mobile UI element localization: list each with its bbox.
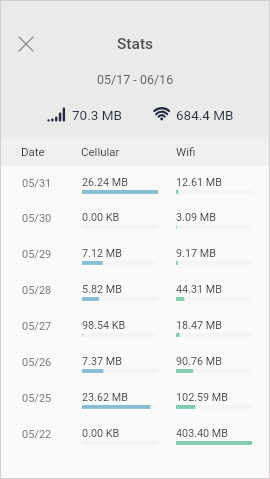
staticText: 7.37 MB (82, 355, 122, 368)
staticText: 70.3 MB (72, 107, 122, 123)
staticText: 05/31 (22, 177, 52, 190)
staticText: Wifi (176, 145, 196, 158)
staticText: 05/27 (22, 320, 52, 333)
staticText: 05/28 (22, 284, 52, 297)
staticText: 05/25 (22, 392, 52, 405)
staticText: 05/26 (22, 356, 52, 369)
button[interactable]: 05/31 (0, 166, 270, 201)
staticText: 05/22 (22, 428, 52, 441)
staticText: 0.00 KB (82, 211, 120, 224)
staticText: 90.76 MB (176, 355, 222, 368)
staticText: 18.47 MB (176, 319, 222, 332)
staticText: 05/30 (22, 212, 52, 225)
staticText: Cellular (81, 145, 120, 158)
staticText: Date (21, 145, 45, 158)
staticText: 684.4 MB (176, 107, 234, 123)
button[interactable]: 05/26 (0, 345, 270, 381)
staticText: 05/17 - 06/16 (97, 72, 174, 87)
button[interactable]: Cellular usage (44, 102, 129, 124)
button[interactable]: 05/25 (0, 381, 270, 417)
staticText: 26.24 MB (82, 176, 128, 189)
staticText: 12.61 MB (176, 176, 222, 189)
staticText: 403.40 MB (176, 427, 229, 440)
staticText: 9.17 MB (176, 247, 216, 260)
staticText: 05/29 (22, 248, 52, 261)
button[interactable]: 05/22 (0, 417, 270, 453)
staticText: Stats (117, 35, 154, 53)
button[interactable]: Wifi usage (150, 102, 242, 124)
button[interactable]: 05/29 (0, 237, 270, 273)
staticText: 5.82 MB (82, 283, 122, 296)
staticText: 0.00 KB (82, 427, 120, 440)
button[interactable]: Close (12, 30, 40, 58)
staticText: 44.31 MB (176, 283, 222, 296)
button[interactable]: 05/30 (0, 201, 270, 237)
staticText: 23.62 MB (82, 391, 128, 404)
staticText: 3.09 MB (176, 211, 216, 224)
button[interactable]: 05/28 (0, 273, 270, 309)
button[interactable]: 05/27 (0, 309, 270, 345)
staticText: 7.12 MB (82, 247, 122, 260)
staticText: 98.54 KB (82, 319, 126, 332)
staticText: 102.59 MB (176, 391, 229, 404)
